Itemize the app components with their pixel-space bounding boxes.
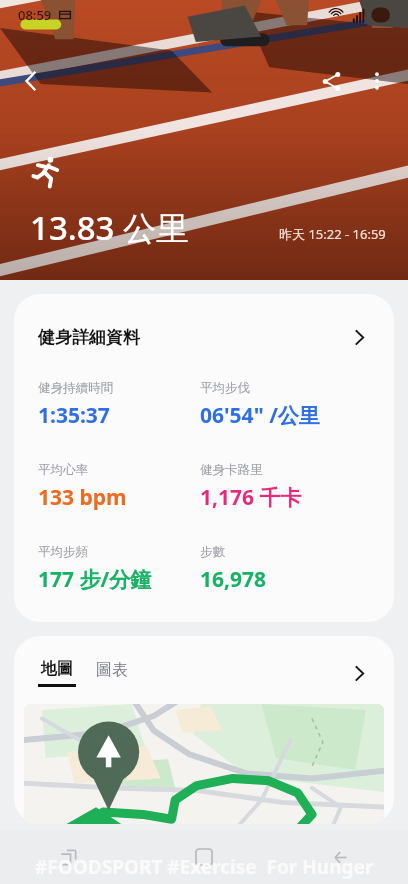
button[interactable]: Share — [308, 58, 354, 104]
staticText: 133 bpm — [38, 483, 127, 512]
button[interactable]: Back — [272, 830, 408, 884]
button[interactable]: 健身詳細資料 — [14, 294, 394, 622]
staticText: 06'54" /公里 — [200, 401, 320, 430]
staticText: 健身詳細資料 — [38, 327, 140, 348]
button[interactable]: 地圖 — [38, 659, 76, 687]
button[interactable]: Route map — [24, 704, 384, 824]
staticText: 步數 — [200, 544, 225, 560]
staticText: 13.83 公里 — [30, 205, 190, 250]
button[interactable]: Open map — [342, 656, 376, 690]
button[interactable]: 圖表 — [96, 660, 128, 687]
staticText: 177 步/分鐘 — [38, 565, 152, 594]
staticText: #FOODSPORT #Exercise For Hunger — [35, 854, 374, 880]
staticText: 地圖 — [41, 659, 73, 679]
staticText: 健身持續時間 — [38, 380, 113, 396]
staticText: 昨天 15:22 - 16:59 — [279, 225, 386, 243]
staticText: 16,978 — [200, 565, 267, 594]
button[interactable]: Home — [136, 830, 272, 884]
staticText: 圖表 — [96, 660, 128, 680]
button[interactable]: Back — [8, 58, 54, 104]
staticText: 1:35:37 — [38, 401, 110, 430]
staticText: 1,176 千卡 — [200, 483, 302, 512]
staticText: 08:59 — [18, 6, 52, 24]
staticText: 健身卡路里 — [200, 462, 263, 478]
button[interactable]: Recents — [0, 830, 136, 884]
staticText: 平均步伐 — [200, 380, 250, 396]
button[interactable]: More options — [354, 58, 400, 104]
staticText: 平均心率 — [38, 462, 88, 478]
staticText: 平均步頻 — [38, 544, 88, 560]
button[interactable]: Open fitness details — [342, 320, 376, 354]
